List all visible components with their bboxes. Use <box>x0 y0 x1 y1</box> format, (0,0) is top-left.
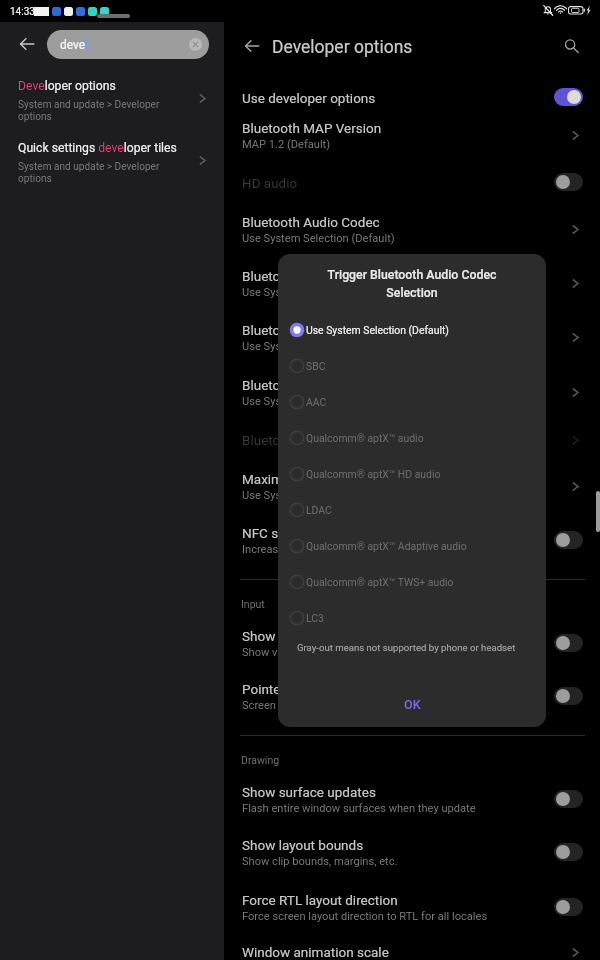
staticText: Maximum connected Bluetooth audio device… <box>242 471 516 487</box>
button[interactable]: LC3 <box>278 600 546 636</box>
button[interactable]: Back <box>10 27 44 61</box>
button[interactable]: LDAC <box>278 492 546 528</box>
staticText: Use System Selection (Default) <box>242 489 395 502</box>
staticText: Use System Selection (Default) <box>242 286 395 299</box>
staticText: System and update > Developer options <box>18 99 160 123</box>
staticText: Show surface updates <box>242 784 376 800</box>
button[interactable]: Use developer options <box>225 90 600 112</box>
button[interactable]: Force RTL layout direction <box>225 892 600 930</box>
button[interactable]: OK <box>384 691 441 718</box>
staticText: HD audio <box>242 175 298 191</box>
staticText: MAP 1.2 (Default) <box>242 138 331 151</box>
other: Clear search <box>189 38 202 51</box>
button[interactable]: Bluetooth Audio Channel Mode <box>225 377 600 415</box>
button[interactable]: Maximum connected Bluetooth audio device… <box>225 471 600 509</box>
button[interactable]: Bluetooth MAP Version <box>225 120 600 158</box>
staticText: Use System Selection (Default) <box>306 324 449 336</box>
staticText: Gray-out means not supported by phone or… <box>297 642 516 653</box>
staticText: Developer options <box>272 37 413 58</box>
button[interactable]: Qualcomm® aptX™ Adaptive audio <box>278 528 546 564</box>
button[interactable]: Window animation scale <box>225 944 600 960</box>
staticText: Drawing <box>241 754 280 766</box>
button[interactable]: Force RTL layout direction <box>554 898 583 916</box>
staticText: Bluetooth Audio Bits Per Sample <box>242 322 437 338</box>
button[interactable]: Quick settings developer tiles <box>0 141 224 193</box>
button[interactable]: NFC stack debug logs <box>554 531 583 549</box>
staticText: Show clip bounds, margins, etc. <box>242 855 398 868</box>
staticText: Use developer options <box>242 90 376 106</box>
staticText: Pointer location <box>242 681 337 697</box>
staticText: deve <box>60 38 86 52</box>
button[interactable]: Qualcomm® aptX™ HD audio <box>278 456 546 492</box>
button[interactable]: Show surface updates <box>554 790 583 808</box>
button[interactable]: Qualcomm® aptX™ audio <box>278 420 546 456</box>
staticText: Show taps <box>242 628 305 644</box>
button[interactable]: Bluetooth Audio Bits Per Sample <box>225 322 600 360</box>
staticText: Quick settings developer tiles <box>18 141 177 155</box>
button[interactable]: Show surface updates <box>225 784 600 822</box>
staticText: Screen overlay showing current touch dat… <box>242 699 452 712</box>
button[interactable]: deve <box>47 30 209 59</box>
staticText: NFC stack debug logs <box>242 525 374 541</box>
staticText: LC3 <box>306 612 324 624</box>
staticText: SBC <box>306 360 326 372</box>
staticText: Show visual feedback for taps <box>242 646 391 659</box>
staticText: Force screen layout direction to RTL for… <box>242 910 488 923</box>
button[interactable]: SBC <box>278 348 546 384</box>
staticText: AAC <box>306 396 327 408</box>
staticText: Increase NFC logging level <box>242 543 373 556</box>
staticText: Trigger Bluetooth Audio Codec Selection <box>308 268 516 300</box>
staticText: Use System Selection (Default) <box>242 340 395 353</box>
staticText: System and update > Developer options <box>18 161 160 185</box>
staticText: Use System Selection (Default) <box>242 232 395 245</box>
button[interactable]: Show layout bounds <box>554 843 583 861</box>
staticText: Qualcomm® aptX™ HD audio <box>306 468 441 480</box>
button[interactable]: Use System Selection (Default) <box>278 312 546 348</box>
staticText: Force RTL layout direction <box>242 892 398 908</box>
button[interactable]: Bluetooth Audio Codec <box>225 214 600 252</box>
staticText: Developer options <box>18 79 116 93</box>
button[interactable]: Qualcomm® aptX™ TWS+ audio <box>278 564 546 600</box>
button[interactable]: AAC <box>278 384 546 420</box>
button[interactable]: Pointer location <box>225 681 600 719</box>
staticText: Qualcomm® aptX™ Adaptive audio <box>306 540 467 552</box>
staticText: Bluetooth Audio Channel Mode <box>242 377 428 393</box>
staticText: Bluetooth Audio Codec <box>242 214 380 230</box>
button[interactable]: Developer options <box>0 79 224 131</box>
button[interactable]: Use developer options <box>554 88 583 106</box>
staticText: Flash entire window surfaces when they u… <box>242 802 476 815</box>
button[interactable]: HD audio <box>554 173 583 191</box>
button[interactable]: Show taps <box>554 634 583 652</box>
staticText: Bluetooth MAP Version <box>242 120 382 136</box>
button[interactable]: Bluetooth Audio Sample Rate <box>225 268 600 306</box>
button[interactable]: HD audio <box>225 175 600 197</box>
staticText: Show layout bounds <box>242 837 364 853</box>
staticText: Qualcomm® aptX™ TWS+ audio <box>306 576 454 588</box>
staticText: Bluetooth Audio LDAC Codec: Playback Qua… <box>242 432 523 448</box>
button[interactable]: Search <box>554 29 588 63</box>
staticText: Input <box>241 598 265 610</box>
staticText: Use System Selection (Default) <box>242 395 395 408</box>
button[interactable]: Show layout bounds <box>225 837 600 875</box>
button[interactable]: Bluetooth Audio LDAC Codec: Playback Qua… <box>225 432 600 454</box>
staticText: Qualcomm® aptX™ audio <box>306 432 424 444</box>
button[interactable]: Show taps <box>225 628 600 666</box>
staticText: 14:33 <box>10 6 35 18</box>
staticText: OK <box>404 697 421 712</box>
button[interactable]: Pointer location <box>554 687 583 705</box>
staticText: Window animation scale <box>242 944 389 960</box>
staticText: LDAC <box>306 504 332 516</box>
staticText: Bluetooth Audio Sample Rate <box>242 268 418 284</box>
button[interactable]: Back <box>235 29 269 63</box>
button[interactable]: NFC stack debug logs <box>225 525 600 563</box>
